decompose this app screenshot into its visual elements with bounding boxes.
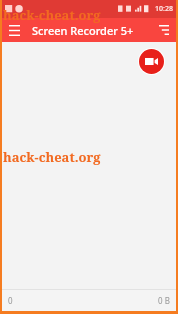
- staticText: 0 B: [158, 295, 170, 306]
- staticText: 10:28: [155, 4, 173, 14]
- staticText: Screen Recorder 5+: [32, 23, 134, 38]
- staticText: hack-cheat.org: [3, 148, 101, 166]
- staticText: hack-cheat.org: [3, 6, 101, 24]
- button[interactable]: Start recording: [139, 49, 164, 74]
- button[interactable]: Sort: [152, 18, 176, 42]
- staticText: 0: [8, 295, 13, 306]
- button[interactable]: Open navigation menu: [2, 18, 26, 42]
